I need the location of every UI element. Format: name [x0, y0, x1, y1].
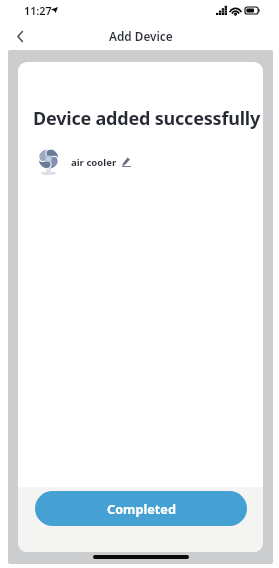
staticText: Add Device — [109, 28, 173, 44]
button[interactable]: air cooler — [38, 148, 131, 176]
button[interactable]: Completed — [35, 491, 247, 526]
staticText: 11:27 — [24, 3, 52, 18]
staticText: Device added successfully — [33, 106, 261, 131]
staticText: Completed — [107, 500, 176, 517]
button[interactable]: Back — [6, 22, 34, 50]
staticText: air cooler — [71, 156, 117, 169]
